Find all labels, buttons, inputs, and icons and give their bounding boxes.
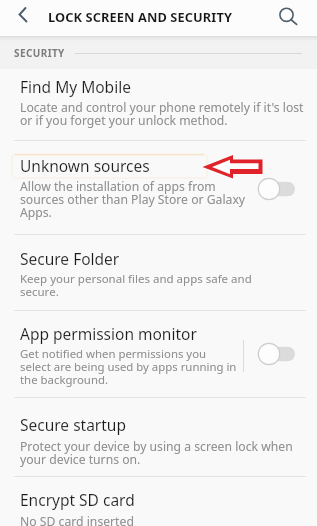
- staticText: Secure Folder: [20, 248, 120, 269]
- staticText: Allow the installation of apps from sour…: [20, 178, 246, 221]
- button[interactable]: [0, 234, 317, 310]
- staticText: Encrypt SD card: [20, 489, 135, 510]
- button[interactable]: [0, 69, 317, 140]
- staticText: Get notified when permissions you select…: [20, 346, 237, 388]
- button[interactable]: [256, 176, 298, 202]
- staticText: Find My Mobile: [20, 76, 131, 97]
- button[interactable]: [0, 397, 317, 476]
- button[interactable]: [0, 310, 317, 397]
- button[interactable]: [256, 341, 298, 367]
- staticText: Keep your personal files and apps safe a…: [20, 271, 252, 300]
- staticText: Protect your device by using a screen lo…: [20, 438, 293, 468]
- button[interactable]: [276, 4, 302, 30]
- staticText: Locate and control your phone remotely i…: [20, 99, 304, 129]
- button[interactable]: [16, 5, 30, 23]
- staticText: LOCK SCREEN AND SECURITY: [48, 8, 233, 25]
- staticText: App permission monitor: [20, 323, 197, 344]
- staticText: SECURITY: [14, 46, 65, 60]
- staticText: Secure startup: [20, 414, 126, 435]
- button[interactable]: [0, 476, 317, 526]
- button[interactable]: [0, 140, 317, 234]
- staticText: Unknown sources: [20, 155, 150, 176]
- staticText: No SD card inserted: [20, 513, 134, 526]
